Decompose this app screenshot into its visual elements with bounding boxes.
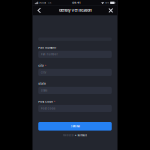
staticText: ✦ xyxy=(74,134,76,137)
staticText: 87% xyxy=(104,1,109,4)
button[interactable]: Close xyxy=(105,6,116,15)
staticText: Pan number xyxy=(41,53,58,56)
staticText: 09:41 xyxy=(72,1,80,4)
staticText: sumsub xyxy=(77,134,87,137)
staticText: State xyxy=(38,82,46,85)
staticText: Pan number xyxy=(38,46,56,49)
staticText: Continue xyxy=(70,125,79,128)
staticText: Airtel xyxy=(38,1,46,4)
staticText: * xyxy=(54,100,55,103)
staticText: * xyxy=(45,64,46,67)
staticText: City xyxy=(41,71,46,74)
button[interactable]: Continue xyxy=(38,122,112,131)
staticText: Identity Verification xyxy=(58,8,91,13)
staticText: City xyxy=(38,64,44,67)
button[interactable]: Back xyxy=(34,6,45,15)
staticText: Post code xyxy=(38,100,53,103)
staticText: Powered by xyxy=(63,134,74,137)
staticText: LTE xyxy=(46,1,51,4)
staticText: State xyxy=(41,89,48,92)
staticText: Post code xyxy=(41,107,56,110)
